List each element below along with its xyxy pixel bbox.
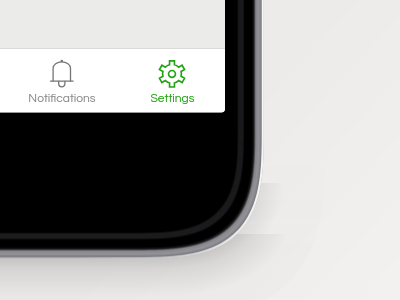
button[interactable]: Notifications bbox=[7, 49, 117, 112]
staticText: Notifications bbox=[28, 92, 96, 104]
button[interactable]: Settings bbox=[117, 49, 227, 112]
staticText: Settings bbox=[150, 92, 195, 104]
